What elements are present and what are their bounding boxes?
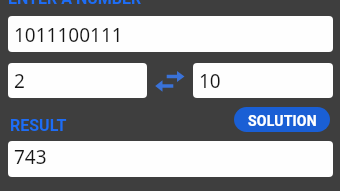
staticText: 743: [14, 144, 47, 170]
button[interactable]: 743: [8, 141, 333, 177]
button[interactable]: SOLUTION: [234, 107, 330, 132]
staticText: ENTER A NUMBER: [8, 0, 142, 8]
button[interactable]: Swap number bases: [155, 70, 185, 92]
staticText: SOLUTION: [248, 113, 317, 129]
button[interactable]: 10: [193, 63, 333, 98]
button[interactable]: 2: [8, 63, 147, 98]
staticText: 1011100111: [14, 22, 123, 48]
button[interactable]: 1011100111: [8, 16, 333, 52]
staticText: 10: [199, 68, 221, 94]
staticText: RESULT: [10, 116, 67, 135]
staticText: 2: [14, 68, 25, 94]
